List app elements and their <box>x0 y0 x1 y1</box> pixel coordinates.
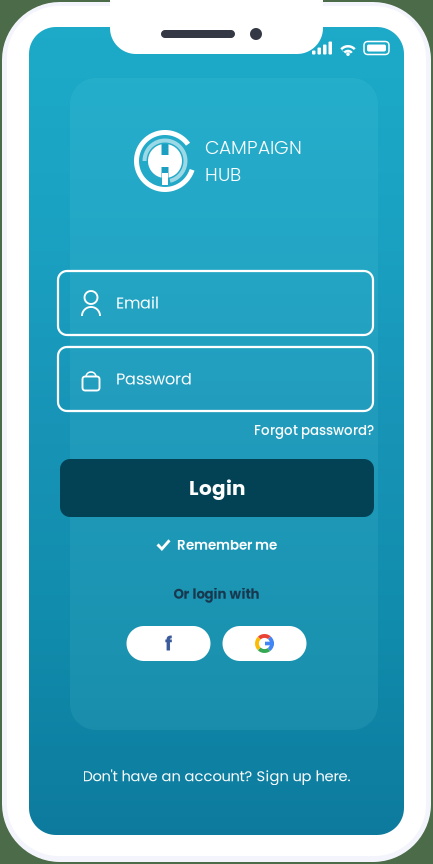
staticText: Login <box>189 474 245 502</box>
button[interactable]: Or login with <box>29 586 404 602</box>
staticText: Email <box>116 292 159 314</box>
staticText: f <box>165 629 172 657</box>
staticText: Remember me <box>177 536 277 554</box>
button[interactable]: Login <box>60 459 374 517</box>
staticText: Forgot password? <box>254 421 374 440</box>
staticText: Or login with <box>173 585 259 603</box>
staticText: Password <box>116 368 192 390</box>
button[interactable]: Sign in with Facebook <box>126 626 210 661</box>
staticText: Don't have an account? Sign up here. <box>82 766 350 786</box>
button[interactable]: Remember me <box>156 536 277 554</box>
staticText: CAMPAIGN <box>205 134 302 160</box>
button[interactable]: Forgot password? <box>254 421 374 440</box>
staticText: HUB <box>205 161 241 188</box>
button[interactable]: Email <box>58 271 373 335</box>
button[interactable]: Sign in with Google <box>222 626 306 661</box>
button[interactable]: Don't have an account? Sign up here. <box>82 766 350 786</box>
button[interactable]: Password <box>58 347 373 411</box>
